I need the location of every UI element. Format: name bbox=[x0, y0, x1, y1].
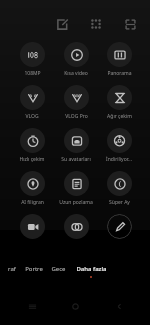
button[interactable]: Edit modes bbox=[52, 14, 72, 34]
staticText: raf bbox=[8, 265, 16, 273]
staticText: Su avatarları bbox=[61, 156, 91, 163]
staticText: 108MP bbox=[24, 70, 41, 77]
button[interactable]: Home bbox=[63, 295, 87, 317]
staticText: Ağır çekim bbox=[107, 113, 132, 120]
button[interactable]: AI filigran bbox=[10, 171, 54, 206]
button[interactable]: Camera mode bbox=[98, 214, 140, 239]
staticText: Uzun pozlama bbox=[59, 199, 93, 206]
staticText: İndiriliyor... bbox=[106, 156, 132, 163]
staticText: VLOG bbox=[25, 113, 39, 120]
staticText: Kısa video bbox=[64, 70, 88, 77]
button[interactable]: Hızlı çekim bbox=[10, 128, 54, 163]
button[interactable]: Panorama bbox=[98, 42, 140, 77]
staticText: Panorama bbox=[107, 70, 132, 77]
staticText: Portre bbox=[25, 265, 43, 273]
button[interactable]: Kısa video bbox=[54, 42, 98, 77]
staticText: AI filigran bbox=[21, 199, 44, 206]
button[interactable]: Camera mode bbox=[54, 214, 98, 239]
button[interactable]: Daha fazla bbox=[70, 261, 112, 281]
button[interactable]: VLOG Pro bbox=[54, 85, 98, 120]
button[interactable]: raf bbox=[2, 261, 21, 281]
button[interactable]: Ağır çekim bbox=[98, 85, 140, 120]
staticText: Süper Ay bbox=[109, 199, 130, 206]
button[interactable]: Uzun pozlama bbox=[54, 171, 98, 206]
button[interactable]: Recent apps bbox=[20, 295, 44, 317]
staticText: Gece bbox=[51, 265, 66, 273]
button[interactable]: Gece bbox=[47, 261, 70, 281]
button[interactable]: 108MP bbox=[10, 42, 54, 77]
button[interactable]: Portre bbox=[21, 261, 47, 281]
staticText: Daha fazla bbox=[76, 265, 107, 273]
button[interactable]: Collapse bbox=[120, 14, 140, 34]
button[interactable]: Su avatarları bbox=[54, 128, 98, 163]
button[interactable]: VLOG bbox=[10, 85, 54, 120]
button[interactable]: Arrange bbox=[86, 14, 106, 34]
button[interactable]: Camera mode bbox=[10, 214, 54, 239]
staticText: Hızlı çekim bbox=[19, 156, 45, 163]
button[interactable]: İndiriliyor... bbox=[98, 128, 140, 163]
button[interactable]: Süper Ay bbox=[98, 171, 140, 206]
staticText: VLOG Pro bbox=[65, 113, 88, 120]
